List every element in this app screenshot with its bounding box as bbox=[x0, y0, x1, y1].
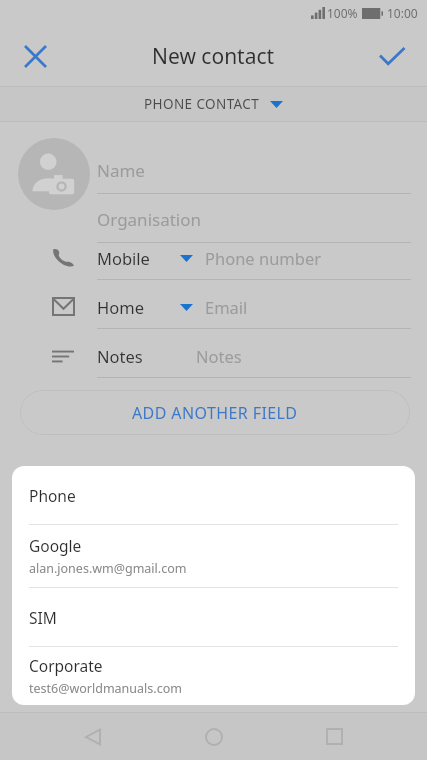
staticText: Corporate bbox=[29, 655, 103, 676]
staticText: Notes bbox=[196, 345, 242, 367]
staticText: Organisation bbox=[97, 208, 202, 231]
button[interactable]: Phone bbox=[12, 466, 415, 524]
staticText: Email bbox=[205, 296, 248, 318]
staticText: Phone bbox=[29, 485, 76, 506]
button[interactable]: Mobile bbox=[0, 234, 427, 282]
button[interactable]: ADD ANOTHER FIELD bbox=[20, 390, 410, 435]
staticText: Home bbox=[97, 296, 144, 318]
button[interactable]: Cancel bbox=[11, 32, 59, 80]
button[interactable]: Notes bbox=[0, 332, 427, 380]
button[interactable]: Add photo bbox=[18, 138, 90, 210]
staticText: Name bbox=[97, 159, 145, 182]
button[interactable]: Recents bbox=[306, 713, 362, 760]
button[interactable]: Home bbox=[0, 283, 427, 331]
staticText: ADD ANOTHER FIELD bbox=[132, 402, 298, 424]
staticText: PHONE CONTACT bbox=[144, 95, 260, 113]
staticText: SIM bbox=[29, 607, 57, 628]
button[interactable]: Corporate bbox=[12, 647, 415, 705]
button[interactable]: Save bbox=[368, 32, 416, 80]
staticText: Phone number bbox=[205, 247, 322, 269]
staticText: Mobile bbox=[97, 247, 150, 269]
button[interactable]: Organisation bbox=[97, 197, 411, 243]
staticText: Notes bbox=[97, 345, 143, 367]
staticText: 100% bbox=[327, 5, 358, 21]
button[interactable]: PHONE CONTACT bbox=[0, 87, 427, 121]
staticText: 10:00 bbox=[387, 5, 418, 21]
button[interactable]: SIM bbox=[12, 588, 415, 646]
button[interactable]: Back bbox=[65, 713, 121, 760]
button[interactable]: Google bbox=[12, 525, 415, 587]
staticText: New contact bbox=[152, 42, 275, 71]
staticText: alan.jones.wm@gmail.com bbox=[29, 560, 187, 577]
button[interactable]: Name bbox=[97, 148, 411, 194]
button[interactable]: Home bbox=[186, 713, 242, 760]
staticText: Google bbox=[29, 535, 82, 556]
staticText: test6@worldmanuals.com bbox=[29, 680, 182, 697]
